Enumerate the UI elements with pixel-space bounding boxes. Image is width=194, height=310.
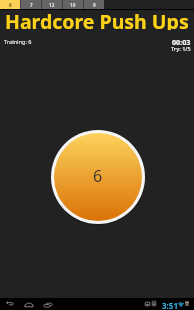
- other: Screenshot captured: [145, 302, 150, 306]
- staticText: 9: [93, 2, 96, 8]
- staticText: 12: [49, 2, 55, 8]
- staticText: 6: [93, 165, 103, 187]
- staticText: 10: [70, 2, 76, 8]
- staticText: Hardcore Push Ups: [5, 8, 189, 30]
- button[interactable]: 6: [54, 133, 142, 221]
- button[interactable]: Back: [5, 299, 15, 309]
- button[interactable]: 6: [0, 0, 20, 9]
- staticText: 3:51: [162, 300, 178, 310]
- staticText: 7: [30, 2, 33, 8]
- button[interactable]: Home: [24, 299, 34, 309]
- staticText: Try: 1/5: [171, 45, 191, 52]
- other: Battery: [185, 301, 189, 306]
- staticText: Training: 6: [4, 38, 32, 46]
- button[interactable]: 9: [84, 0, 104, 9]
- button[interactable]: Recents: [43, 299, 55, 310]
- staticText: 6: [9, 2, 12, 8]
- staticText: 00:03: [172, 37, 191, 47]
- button[interactable]: 7: [21, 0, 41, 9]
- button[interactable]: 10: [63, 0, 83, 9]
- other: Wi-Fi: [178, 302, 184, 307]
- other: USB connected: [152, 301, 156, 306]
- button[interactable]: 12: [42, 0, 62, 9]
